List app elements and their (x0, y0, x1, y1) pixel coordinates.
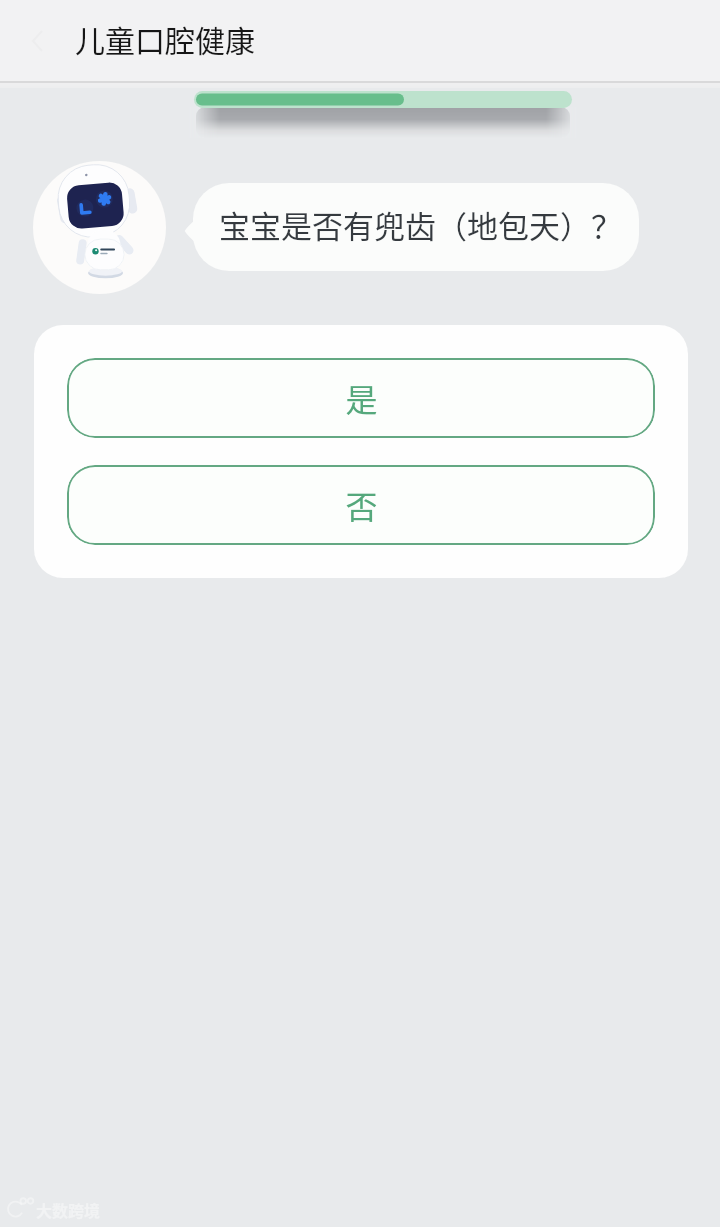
button[interactable]: 否 (67, 465, 655, 545)
staticText: 否 (345, 482, 378, 528)
staticText: 是 (345, 375, 378, 421)
staticText: 大数跨境 (36, 1198, 101, 1221)
staticText: 宝宝是否有兜齿（地包天）？ (219, 202, 622, 247)
button[interactable]: 是 (67, 358, 655, 438)
staticText: 儿童口腔健康 (75, 17, 255, 60)
